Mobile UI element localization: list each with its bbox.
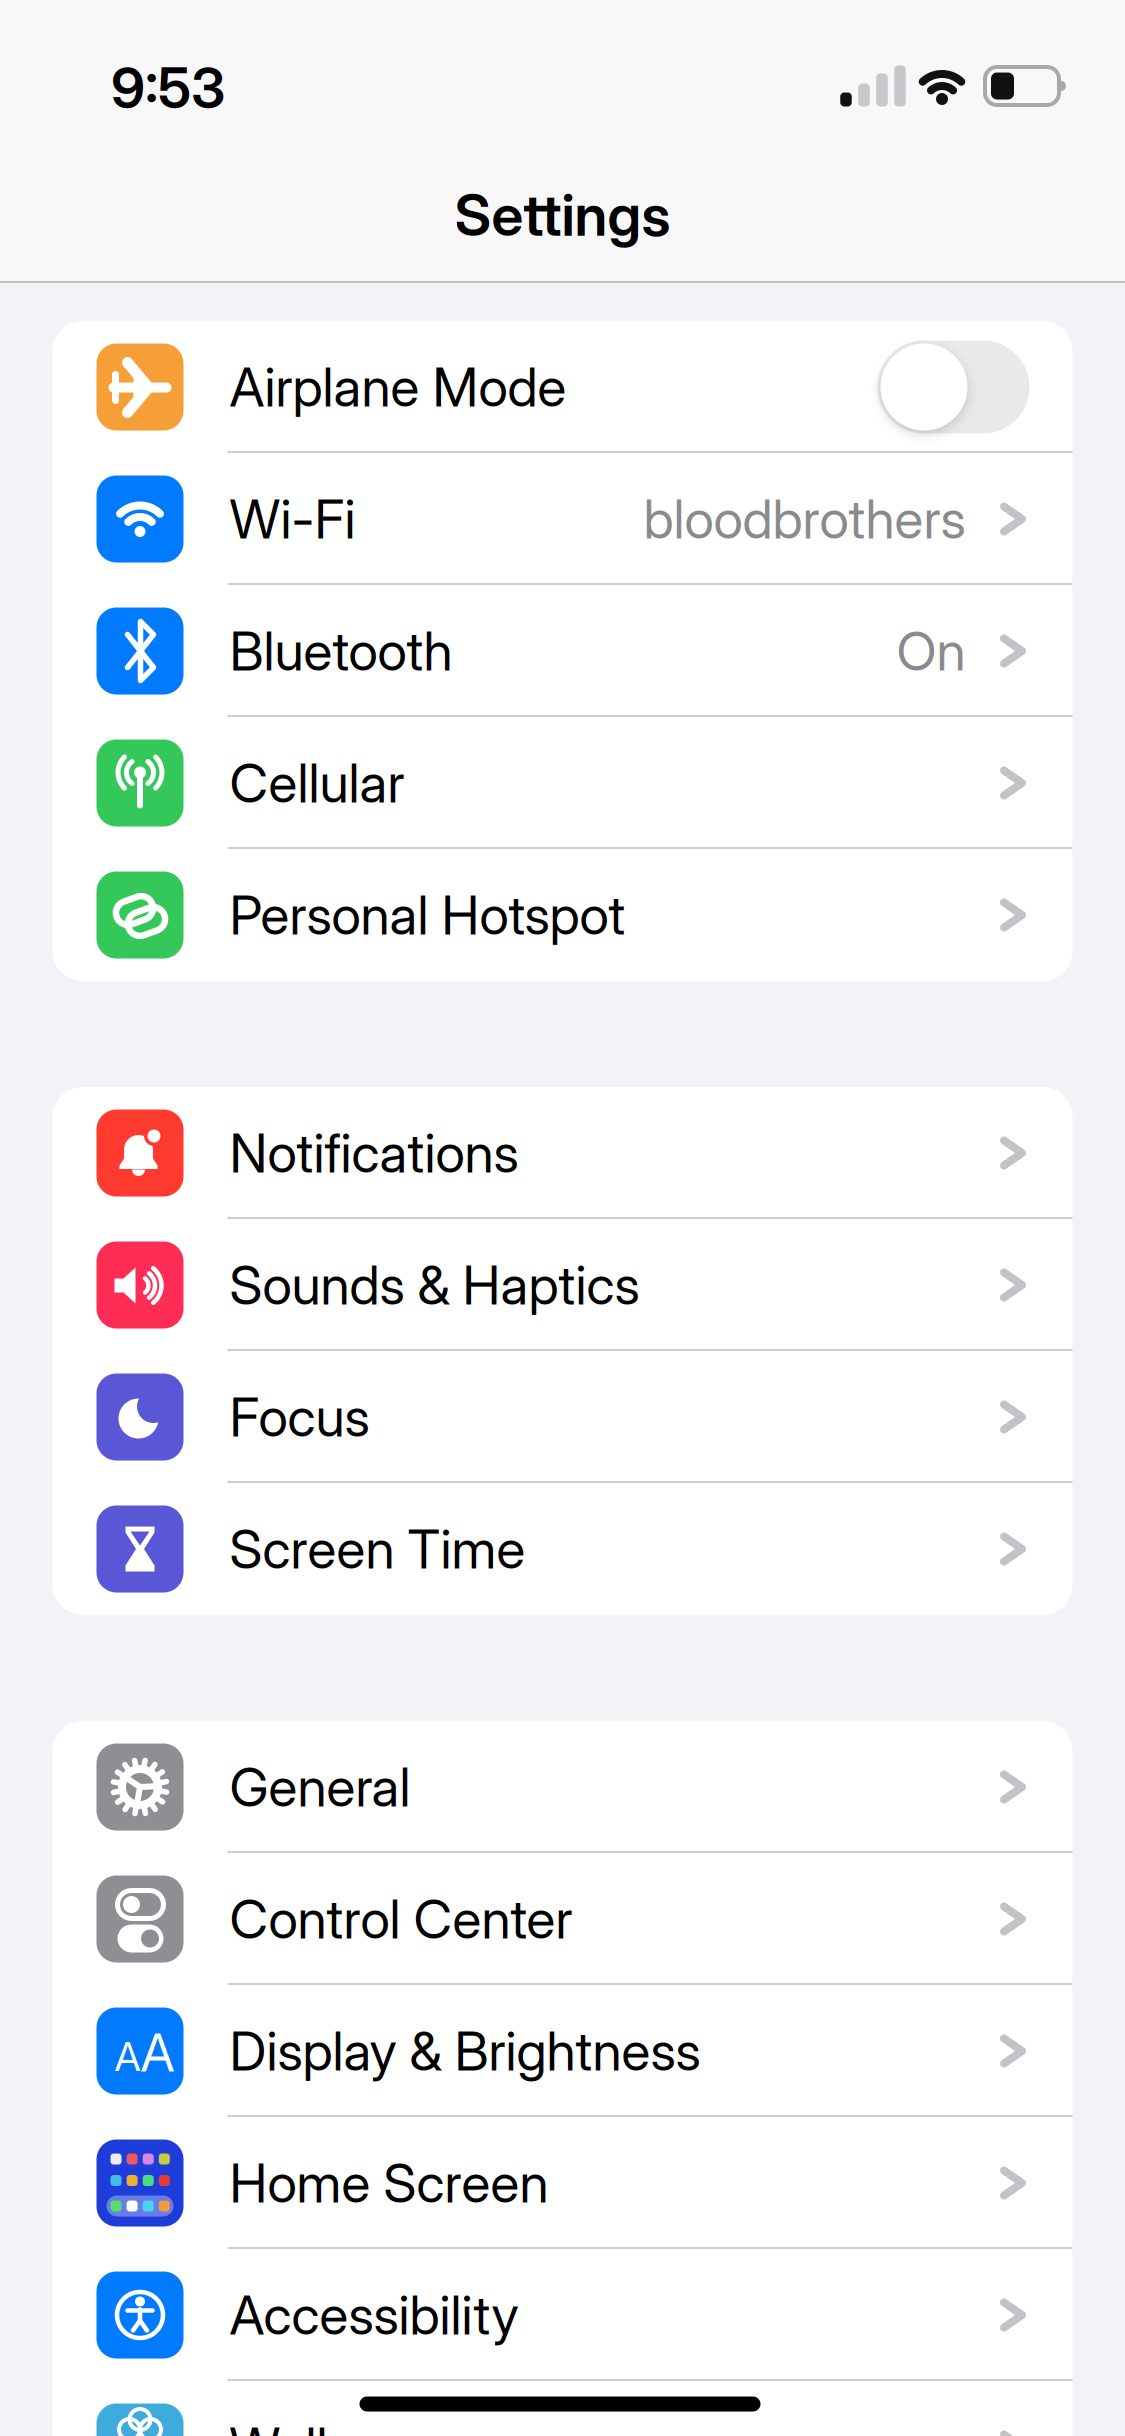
- button[interactable]: Focus: [52, 1351, 1072, 1483]
- button[interactable]: Sounds & Haptics: [52, 1219, 1072, 1351]
- staticText: Home Screen: [229, 2151, 548, 2215]
- staticText: Wi-Fi: [229, 487, 355, 551]
- staticText: Accessibility: [229, 2283, 518, 2347]
- staticText: A: [140, 2021, 174, 2084]
- staticText: Control Center: [229, 1887, 572, 1951]
- staticText: General: [229, 1755, 410, 1819]
- staticText: On: [896, 619, 965, 683]
- button[interactable]: Wallpaper: [52, 2381, 1072, 2436]
- staticText: Personal Hotspot: [229, 883, 625, 947]
- button[interactable]: Screen Time: [52, 1483, 1072, 1615]
- staticText: Cellular: [229, 751, 404, 815]
- staticText: 9:53: [111, 54, 225, 122]
- button[interactable]: Wi-Fi: [52, 453, 1072, 585]
- button[interactable]: Home Screen: [52, 2117, 1072, 2249]
- staticText: bloodbrothers: [643, 487, 965, 551]
- staticText: Focus: [229, 1385, 369, 1449]
- button[interactable]: Airplane Mode: [877, 340, 1029, 433]
- button[interactable]: Bluetooth: [52, 585, 1072, 717]
- staticText: Airplane Mode: [229, 355, 566, 419]
- button[interactable]: Control Center: [52, 1853, 1072, 1985]
- button[interactable]: Personal Hotspot: [52, 849, 1072, 981]
- staticText: Settings: [454, 180, 670, 250]
- staticText: A: [114, 2032, 140, 2081]
- button[interactable]: Cellular: [52, 717, 1072, 849]
- staticText: Screen Time: [229, 1517, 525, 1581]
- button[interactable]: Notifications: [52, 1087, 1072, 1219]
- staticText: Notifications: [229, 1121, 518, 1185]
- button[interactable]: General: [52, 1721, 1072, 1853]
- staticText: Bluetooth: [229, 619, 452, 683]
- staticText: Wallpaper: [229, 2415, 461, 2436]
- button[interactable]: Accessibility: [52, 2249, 1072, 2381]
- staticText: Sounds & Haptics: [229, 1253, 639, 1317]
- button[interactable]: A: [52, 1985, 1072, 2117]
- staticText: Display & Brightness: [229, 2019, 700, 2083]
